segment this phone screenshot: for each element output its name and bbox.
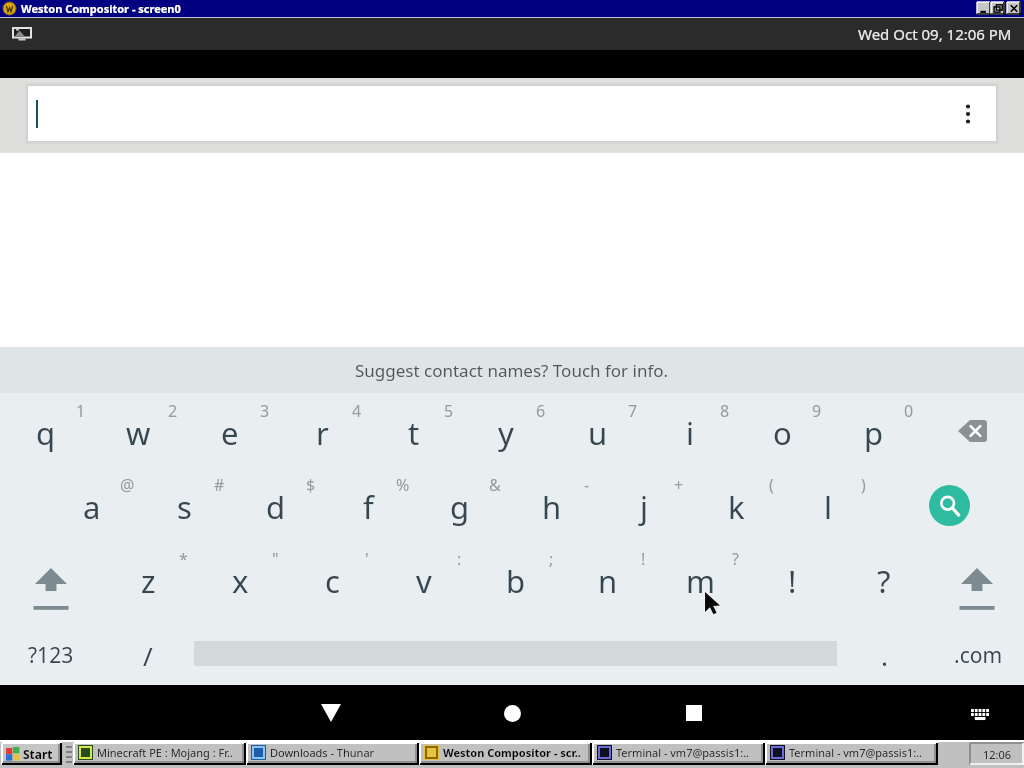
staticText: w (126, 412, 151, 454)
staticText: b (506, 560, 526, 602)
staticText: 1 (76, 400, 86, 422)
staticText: n (598, 560, 618, 602)
staticText: 7 (628, 400, 638, 422)
button[interactable]: Weston Compositor - scr.. (420, 743, 592, 765)
staticText: .com (954, 641, 1003, 670)
button[interactable]: 9 (736, 393, 828, 467)
button[interactable]: Maximize (991, 2, 1005, 15)
staticText: @ (120, 474, 135, 496)
staticText: $ (306, 474, 316, 496)
staticText: - (584, 474, 590, 496)
button[interactable]: 1 (0, 393, 92, 467)
button[interactable]: Home (489, 690, 535, 736)
staticText: ! (788, 560, 797, 602)
staticText: s (177, 486, 192, 528)
button[interactable]: Downloads - Thunar (247, 743, 419, 765)
button[interactable]: More options (28, 86, 996, 141)
staticText: x (232, 560, 249, 602)
button[interactable]: Minecraft PE : Mojang : Fr.. (74, 743, 246, 765)
staticText: 8 (720, 400, 730, 422)
button[interactable]: Close (1007, 2, 1021, 15)
button[interactable]: $ (230, 467, 322, 541)
button[interactable]: / (102, 615, 194, 685)
button[interactable]: More options (954, 100, 982, 128)
staticText: h (542, 486, 562, 528)
button[interactable]: ! (746, 541, 838, 615)
staticText: t (408, 412, 420, 454)
button[interactable]: Screenshot notification (12, 26, 32, 42)
button[interactable]: Shift (930, 541, 1024, 615)
button[interactable]: Switch input method (965, 700, 995, 730)
staticText: i (686, 412, 694, 454)
button[interactable]: Recent apps (671, 690, 717, 736)
button[interactable]: . (837, 615, 932, 685)
staticText: 4 (352, 400, 362, 422)
button[interactable]: Shift (0, 541, 102, 615)
staticText: Weston Compositor - screen0 (21, 1, 181, 16)
button[interactable]: : (378, 541, 470, 615)
staticText: 9 (812, 400, 822, 422)
button[interactable]: Terminal - vm7@passis1:.. (593, 743, 765, 765)
button[interactable]: ! (562, 541, 654, 615)
button[interactable]: & (414, 467, 506, 541)
button[interactable]: Hide keyboard (308, 690, 354, 736)
staticText: 2 (168, 400, 178, 422)
staticText: v (416, 560, 432, 602)
button[interactable]: Search (874, 467, 1024, 541)
staticText: % (396, 474, 410, 496)
button[interactable]: ?123 (0, 615, 102, 685)
staticText: . (881, 638, 888, 673)
button[interactable]: Start (2, 743, 62, 765)
button[interactable]: ? (654, 541, 746, 615)
staticText: Weston Compositor - scr.. (443, 745, 581, 760)
button[interactable]: % (322, 467, 414, 541)
staticText: r (316, 412, 329, 454)
button[interactable]: ' (286, 541, 378, 615)
staticText: " (272, 548, 279, 570)
staticText: ) (861, 474, 866, 496)
button[interactable]: @ (46, 467, 138, 541)
button[interactable]: .com (932, 615, 1024, 685)
staticText: u (588, 412, 608, 454)
staticText: 12:06 (983, 747, 1012, 762)
staticText: Downloads - Thunar (270, 745, 375, 760)
staticText: ( (769, 474, 774, 496)
staticText: 5 (444, 400, 454, 422)
button[interactable]: Space (194, 615, 837, 685)
staticText: + (674, 474, 684, 496)
staticText: 6 (536, 400, 546, 422)
button[interactable]: ? (838, 541, 930, 615)
button[interactable]: Suggest contact names? Touch for info. (0, 347, 1024, 393)
button[interactable]: 5 (368, 393, 460, 467)
staticText: 0 (904, 400, 914, 422)
staticText: m (686, 560, 715, 602)
button[interactable]: + (598, 467, 690, 541)
button[interactable]: 2 (92, 393, 184, 467)
staticText: y (498, 412, 514, 454)
button[interactable]: 8 (644, 393, 736, 467)
staticText: Wed Oct 09, 12:06 PM (858, 24, 1012, 44)
staticText: ! (641, 548, 646, 570)
button[interactable]: 6 (460, 393, 552, 467)
button[interactable]: - (506, 467, 598, 541)
button[interactable]: Terminal - vm7@passis1:.. (766, 743, 938, 765)
staticText: ; (549, 548, 554, 570)
staticText: / (143, 638, 153, 673)
button[interactable]: ; (470, 541, 562, 615)
staticText: c (325, 560, 340, 602)
button[interactable]: * (102, 541, 194, 615)
button[interactable]: ( (690, 467, 782, 541)
staticText: z (141, 560, 156, 602)
button[interactable]: Backspace (920, 393, 1024, 467)
staticText: : (457, 548, 462, 570)
button[interactable]: 3 (184, 393, 276, 467)
staticText: ? (732, 548, 739, 570)
staticText: ? (877, 560, 891, 602)
button[interactable]: 4 (276, 393, 368, 467)
button[interactable]: 7 (552, 393, 644, 467)
button[interactable]: " (194, 541, 286, 615)
button[interactable]: ) (782, 467, 874, 541)
button[interactable]: Minimize (977, 2, 991, 15)
button[interactable]: 0 (828, 393, 920, 467)
button[interactable]: # (138, 467, 230, 541)
